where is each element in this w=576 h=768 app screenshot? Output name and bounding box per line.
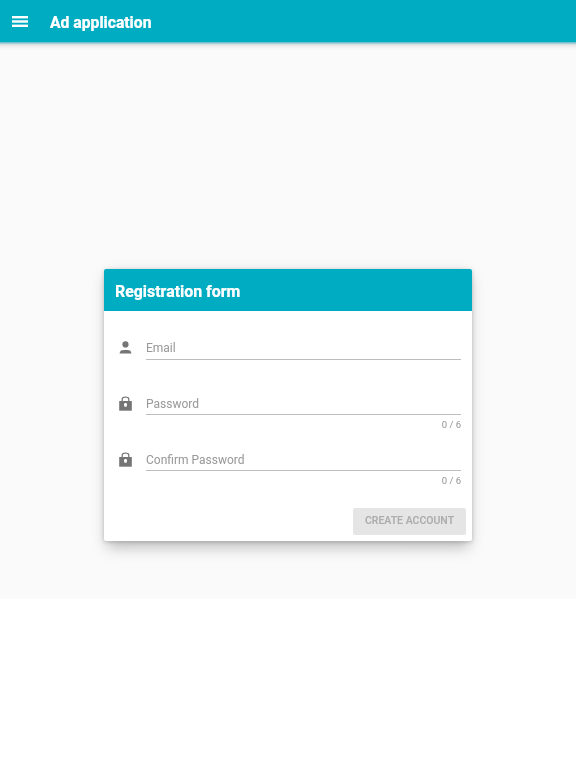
button[interactable]: Open navigation menu [4, 0, 35, 42]
staticText: Ad application [50, 13, 152, 31]
button[interactable]: CREATE ACCOUNT [353, 508, 466, 535]
staticText: 0 / 6 [146, 475, 461, 486]
staticText: Registration form [115, 282, 241, 301]
staticText: Password [146, 397, 200, 411]
staticText: CREATE ACCOUNT [365, 514, 455, 526]
staticText: Confirm Password [146, 453, 245, 467]
staticText: Email [146, 341, 176, 355]
staticText: 0 / 6 [146, 419, 461, 430]
